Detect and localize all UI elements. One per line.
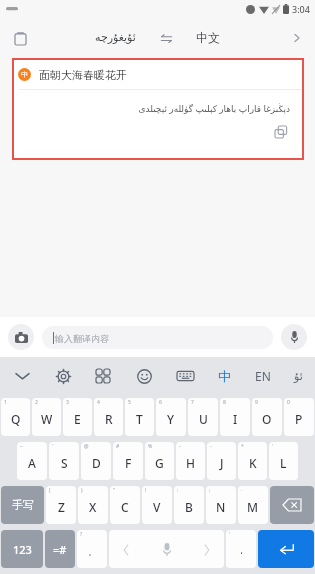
staticText: * (241, 443, 244, 450)
button[interactable]: : (174, 486, 204, 524)
button[interactable]: Emoji (132, 364, 156, 388)
button[interactable]: ئۇيغۇرچە (89, 27, 142, 48)
staticText: % (148, 443, 153, 450)
staticText: ? (80, 531, 83, 538)
button[interactable]: ئۇ (292, 364, 305, 389)
staticText: 输入翻译内容 (55, 333, 109, 344)
staticText: 123 (13, 542, 32, 557)
staticText: 7 (191, 399, 194, 406)
button[interactable]: 输入翻译内容 (42, 326, 273, 349)
staticText: D (92, 455, 101, 471)
button[interactable]: Copy (271, 122, 291, 142)
staticText: ~ (20, 443, 23, 450)
button[interactable]: Clipboard (91, 364, 115, 388)
staticText: N (216, 499, 226, 515)
staticText: Y (167, 411, 175, 427)
button[interactable]: ' (226, 530, 256, 568)
button[interactable]: 9 (252, 398, 282, 436)
staticText: 1 (4, 399, 7, 406)
button[interactable]: 2 (32, 398, 61, 436)
staticText: 。 (88, 546, 97, 557)
button[interactable]: 3 (63, 398, 92, 436)
staticText: ، (240, 546, 243, 556)
staticText: 3:04 (292, 3, 310, 15)
staticText: B (185, 499, 193, 515)
button[interactable]: 5 (125, 398, 154, 436)
staticText: L (280, 455, 287, 471)
button[interactable]: 中 (214, 362, 235, 390)
staticText: ' (272, 443, 274, 450)
button[interactable]: 中文 (190, 26, 226, 49)
button[interactable]: % (145, 442, 174, 480)
button[interactable]: · (238, 486, 268, 524)
staticText: Z (58, 499, 65, 515)
staticText: ) (81, 487, 83, 494)
button[interactable]: Settings (51, 364, 75, 388)
staticText: E (74, 411, 81, 427)
button[interactable]: 8 (220, 398, 250, 436)
button[interactable]: Swap languages (156, 28, 176, 48)
staticText: 8 (223, 399, 226, 406)
staticText: : (177, 487, 179, 494)
button[interactable]: ~ (17, 442, 47, 480)
button[interactable]: ( (46, 486, 76, 524)
button[interactable]: Hide keyboard (10, 364, 34, 388)
staticText: دېڭىزغا قاراپ باھار كېلىپ گۈللەر ئېچىلدى (138, 102, 290, 114)
button[interactable]: More (285, 26, 309, 50)
button[interactable]: ` (49, 442, 79, 480)
staticText: P (295, 411, 303, 427)
button[interactable]: ? (77, 530, 107, 568)
button[interactable]: 中 (12, 58, 304, 160)
staticText: - (179, 443, 181, 450)
staticText: · (241, 487, 243, 494)
button[interactable]: - (207, 442, 236, 480)
button[interactable]: History (7, 25, 33, 51)
button[interactable]: ; (206, 486, 236, 524)
button[interactable]: Voice input (281, 324, 307, 350)
staticText: I (233, 411, 238, 427)
staticText: 中 (21, 70, 28, 79)
staticText: 手写 (12, 498, 34, 512)
staticText: F (125, 455, 132, 471)
staticText: C (121, 499, 129, 515)
button[interactable]: Enter (258, 530, 314, 568)
button[interactable]: Keyboard layout (173, 364, 197, 388)
staticText: 3 (66, 399, 69, 406)
button[interactable]: 6 (156, 398, 186, 436)
button[interactable]: ) (78, 486, 108, 524)
button[interactable]: EN (251, 362, 275, 390)
button[interactable]: =# (45, 530, 75, 568)
button[interactable]: ' (269, 442, 298, 480)
staticText: 5 (128, 399, 131, 406)
staticText: # (116, 443, 120, 450)
staticText: ; (209, 487, 211, 494)
button[interactable]: 123 (1, 530, 43, 568)
staticText: 6 (159, 399, 162, 406)
button[interactable]: Backspace (270, 486, 314, 524)
button[interactable]: " (110, 486, 140, 524)
staticText: W (41, 411, 53, 427)
staticText: M (247, 499, 259, 515)
button[interactable]: 1 (1, 398, 30, 436)
button[interactable]: Camera (8, 324, 34, 350)
staticText: @ (84, 443, 89, 450)
staticText: K (249, 455, 257, 471)
staticText: 中 (218, 368, 231, 384)
button[interactable]: ! (142, 486, 172, 524)
button[interactable]: 7 (188, 398, 218, 436)
staticText: 4 (97, 399, 100, 406)
staticText: ! (145, 487, 147, 494)
staticText: 中文 (196, 30, 220, 45)
button[interactable]: @ (81, 442, 111, 480)
staticText: 9 (255, 399, 258, 406)
button[interactable]: - (176, 442, 205, 480)
button[interactable]: # (113, 442, 143, 480)
staticText: X (89, 499, 97, 515)
staticText: A (28, 455, 36, 471)
button[interactable]: 4 (94, 398, 123, 436)
button[interactable]: 0 (284, 398, 314, 436)
button[interactable]: * (238, 442, 267, 480)
staticText: H (186, 455, 195, 471)
button[interactable]: Space (109, 530, 224, 568)
button[interactable]: 手写 (1, 486, 44, 524)
